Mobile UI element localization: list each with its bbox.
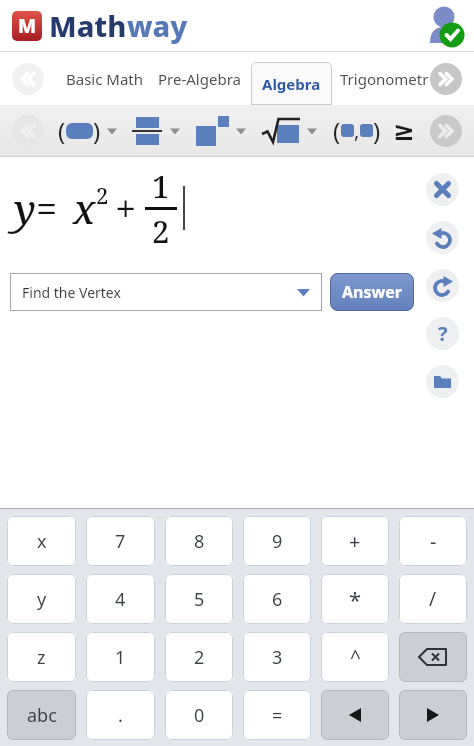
button[interactable]: 2 [165,632,233,682]
button[interactable]: Math [49,6,188,45]
button[interactable]: 5 [165,574,233,624]
button[interactable]: - [399,516,467,566]
button[interactable]: z [7,632,76,682]
staticText: 0 [194,703,205,728]
staticText: 2 [152,210,170,251]
button[interactable]: Answer [330,273,414,311]
button[interactable]: ? [426,317,459,350]
staticText: Pre-Algebra [158,69,241,89]
button[interactable] [426,221,459,254]
button[interactable] [426,365,459,398]
staticText: y [37,587,47,612]
staticText: Answer [342,281,402,303]
button[interactable] [430,115,462,147]
staticText: 2 [194,645,205,670]
staticText: y [14,181,36,235]
button[interactable]: ( [58,114,117,147]
staticText: ^ [350,644,361,670]
staticText: way [127,6,188,45]
button[interactable]: / [399,574,467,624]
button[interactable] [430,63,462,95]
staticText: 2 [96,180,109,210]
button[interactable]: y [7,574,76,624]
button[interactable]: Basic Math [66,69,144,89]
button[interactable]: 6 [243,574,311,624]
button[interactable]: 1 [86,632,155,682]
staticText: Find the Vertex [22,283,121,302]
staticText: z [37,645,46,670]
button[interactable]: ≥ [393,116,415,146]
button[interactable]: Pre-Algebra [158,69,241,89]
staticText: 6 [272,587,283,612]
staticText: abc [27,703,57,728]
button[interactable]: Trigonometr [340,69,429,89]
button[interactable] [399,690,467,740]
button[interactable]: 4 [86,574,155,624]
staticText: 1 [115,645,126,670]
button[interactable]: + [321,516,389,566]
button[interactable] [262,117,317,145]
button[interactable]: Find the Vertex [10,273,322,311]
staticText: 1 [152,165,170,207]
button[interactable] [399,632,467,682]
button[interactable]: * [321,574,389,624]
staticText: + [115,182,137,234]
staticText: 7 [115,529,126,554]
staticText: , [354,117,360,144]
staticText: 3 [272,645,283,670]
button[interactable] [426,269,459,302]
staticText: 5 [194,587,205,612]
button[interactable]: Algebra [251,62,332,105]
staticText: Basic Math [66,69,144,89]
button[interactable]: 9 [243,516,311,566]
staticText: 9 [272,529,283,554]
staticText: = [272,703,283,728]
staticText: ) [93,114,101,147]
staticText: Trigonometr [340,69,429,89]
button[interactable] [428,5,466,47]
button[interactable] [426,173,459,206]
button[interactable]: ^ [321,632,389,682]
staticText: ≥ [393,116,415,146]
button[interactable]: M [12,11,42,41]
staticText: = [36,182,58,234]
staticText: * [349,584,362,614]
staticText: x [37,529,47,554]
button[interactable]: . [86,690,155,740]
button[interactable]: 7 [86,516,155,566]
staticText: ? [438,320,448,347]
button[interactable]: abc [7,690,76,740]
button[interactable] [12,63,44,95]
button[interactable] [12,115,44,147]
staticText: x [73,181,96,235]
staticText: . [118,703,123,728]
staticText: M [18,13,37,39]
button[interactable] [196,116,246,146]
button[interactable] [321,690,389,740]
button[interactable]: 8 [165,516,233,566]
button[interactable]: ( [333,114,381,147]
staticText: + [349,528,361,555]
staticText: ( [333,114,341,147]
staticText: ) [373,114,381,147]
button[interactable] [132,117,180,145]
staticText: 4 [115,587,126,612]
staticText: - [430,528,437,555]
staticText: / [429,586,437,612]
staticText: Algebra [262,74,321,94]
staticText: ( [58,114,66,147]
button[interactable]: 3 [243,632,311,682]
staticText: 8 [194,529,205,554]
button[interactable]: 0 [165,690,233,740]
staticText: Math [49,6,127,45]
button[interactable]: x [7,516,76,566]
button[interactable]: = [243,690,311,740]
